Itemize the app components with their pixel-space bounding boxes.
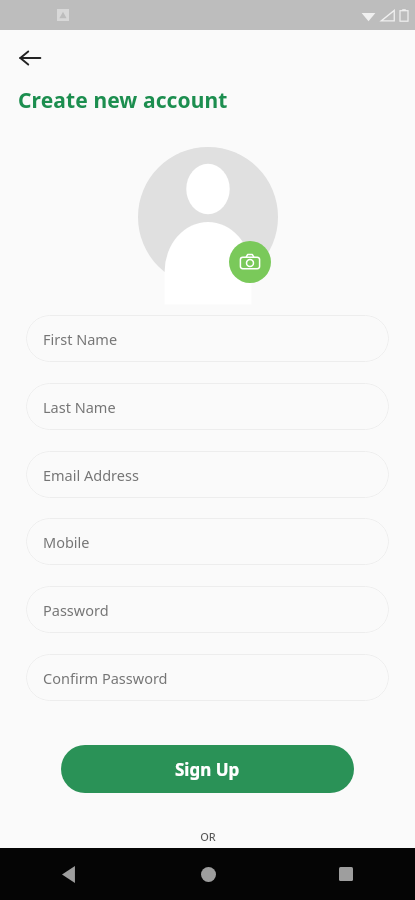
button[interactable]: Recent apps [277,848,415,900]
button[interactable]: Mobile [26,518,389,565]
button[interactable]: Email Address [26,451,389,498]
staticText: Email Address [43,465,139,485]
button[interactable]: Home [139,848,277,900]
staticText: OR [200,829,216,844]
staticText: Mobile [43,532,90,552]
button[interactable]: Last Name [26,383,389,430]
button[interactable]: First Name [26,315,389,362]
staticText: Sign Up [175,758,240,781]
button[interactable]: Change profile photo [229,241,271,283]
button[interactable]: Confirm Password [26,654,389,701]
button[interactable]: Back [10,38,50,78]
staticText: Last Name [43,397,116,417]
button[interactable]: Password [26,586,389,633]
staticText: Create new account [18,86,228,115]
staticText: First Name [43,329,118,349]
button[interactable]: Sign Up [61,745,354,793]
staticText: Password [43,600,109,620]
button[interactable]: Back [0,848,139,900]
staticText: Confirm Password [43,668,168,688]
